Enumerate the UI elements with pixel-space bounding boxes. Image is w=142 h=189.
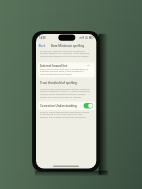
- button[interactable]: Back: [37, 43, 50, 48]
- staticText: Internal hazard lint: [40, 64, 74, 68]
- button[interactable]: Correction Understanding toggle: [38, 102, 95, 111]
- staticText: Trust threshold of spelling: [40, 81, 80, 85]
- staticText: Correction Understanding: [40, 104, 78, 108]
- staticText: 14:05: [39, 36, 50, 40]
- staticText: Choose how confident the checker must be…: [40, 87, 90, 99]
- staticText: Bare Minimum spelling: [51, 44, 85, 48]
- staticText: Flags words that look like a misspelling…: [40, 67, 88, 76]
- staticText: ON: [84, 64, 90, 67]
- staticText: To use this feature you must enable the …: [40, 49, 90, 58]
- staticText: Show a short explanation whenever a word…: [40, 110, 90, 119]
- staticText: Back: [39, 44, 49, 48]
- button[interactable]: [38, 62, 95, 77]
